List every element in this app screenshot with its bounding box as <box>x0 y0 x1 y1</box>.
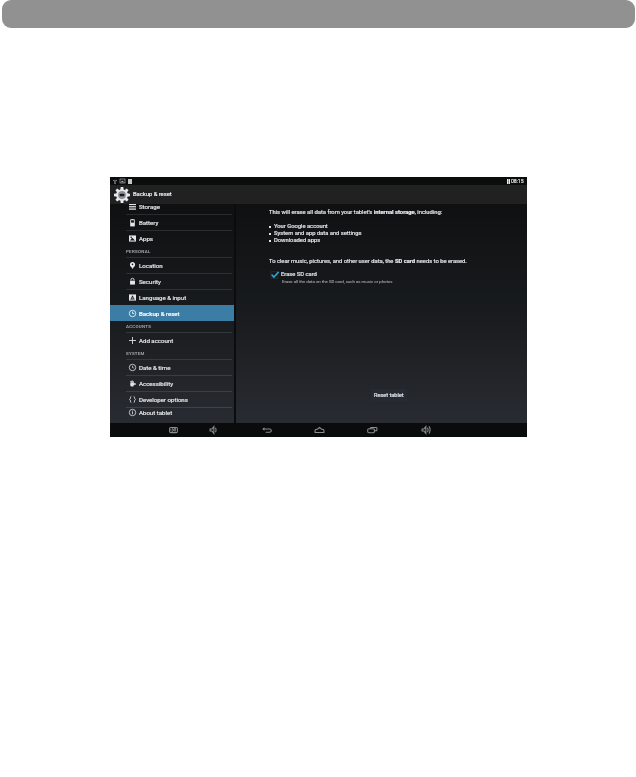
staticText: Reset tablet <box>374 392 404 399</box>
button[interactable]: Volume up <box>418 424 434 436</box>
staticText: Date & time <box>139 364 171 371</box>
button[interactable]: Home <box>311 424 327 436</box>
staticText: This will erase all data from your table… <box>269 209 443 216</box>
staticText: Backup & reset <box>139 310 180 317</box>
staticText: Backup & reset <box>133 191 172 198</box>
button[interactable]: Back <box>259 424 275 436</box>
staticText: 08:15 <box>511 178 524 184</box>
staticText: Erase SD card <box>281 271 317 278</box>
button[interactable]: Reset tablet <box>371 389 407 401</box>
button[interactable]: About tablet <box>110 407 234 417</box>
staticText: Storage <box>139 204 160 210</box>
staticText: SYSTEM <box>126 351 145 356</box>
staticText: About tablet <box>139 409 173 416</box>
button[interactable]: Apps <box>110 230 234 246</box>
staticText: Security <box>139 278 161 285</box>
staticText: PERSONAL <box>126 249 151 254</box>
button[interactable]: Erase SD card <box>269 271 392 284</box>
button[interactable]: Date & time <box>110 359 234 375</box>
staticText: System and app data and settings <box>274 230 362 237</box>
staticText: ACCOUNTS <box>126 324 152 329</box>
button[interactable]: Volume down <box>206 424 222 436</box>
staticText: Language & input <box>139 294 187 301</box>
button[interactable]: Developer options <box>110 391 234 407</box>
button[interactable]: Language & input <box>110 289 234 305</box>
button[interactable]: Screenshot <box>165 424 181 436</box>
button[interactable]: Location <box>110 257 234 273</box>
staticText: Apps <box>139 235 153 242</box>
button[interactable]: Accessibility <box>110 375 234 391</box>
button[interactable]: Add account <box>110 332 234 348</box>
staticText: Add account <box>139 337 174 344</box>
button[interactable]: Security <box>110 273 234 289</box>
button[interactable]: Storage <box>110 204 234 214</box>
staticText: Erase all the data on the SD card, such … <box>282 279 393 284</box>
button[interactable]: Battery <box>110 214 234 230</box>
staticText: Battery <box>139 219 159 226</box>
staticText: Developer options <box>139 396 188 403</box>
button[interactable]: Recent apps <box>364 424 380 436</box>
button[interactable]: Backup & reset <box>110 305 234 321</box>
staticText: Accessibility <box>139 380 174 387</box>
staticText: Your Google account <box>274 223 328 230</box>
staticText: To clear music, pictures, and other user… <box>269 258 467 265</box>
staticText: Location <box>139 262 163 269</box>
staticText: Downloaded apps <box>274 237 321 244</box>
